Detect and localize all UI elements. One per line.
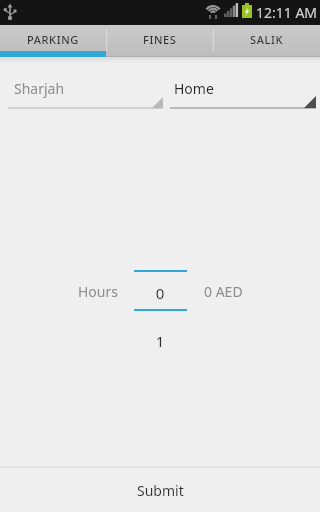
button[interactable]: PARKING — [0, 25, 106, 57]
button[interactable]: SALIK — [213, 25, 320, 57]
staticText: Sharjah — [14, 79, 65, 98]
staticText: 1 — [0, 331, 320, 351]
staticText: Hours — [78, 282, 118, 301]
staticText: 12:11 AM — [256, 3, 318, 22]
staticText: SALIK — [250, 32, 283, 47]
staticText: PARKING — [27, 32, 79, 47]
button[interactable]: Submit — [0, 468, 320, 512]
button[interactable] — [170, 58, 316, 108]
staticText: Submit — [137, 481, 184, 500]
button[interactable]: 0 — [0, 283, 320, 303]
staticText: FINES — [143, 32, 177, 47]
button[interactable] — [8, 58, 164, 108]
staticText: 0 AED — [204, 282, 243, 301]
staticText: Home — [174, 79, 214, 98]
button[interactable]: FINES — [106, 25, 213, 57]
